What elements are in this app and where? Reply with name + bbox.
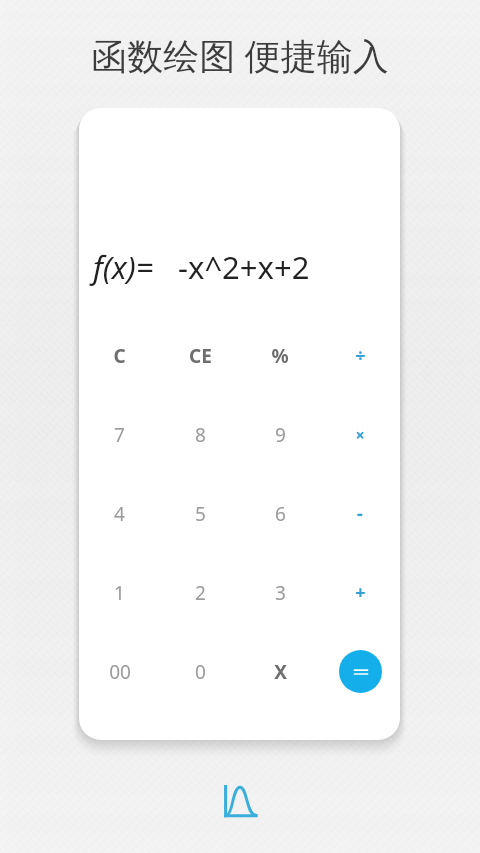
button[interactable]: + <box>320 553 400 632</box>
staticText: CE <box>189 343 212 369</box>
staticText: 函数绘图 便捷输入 <box>91 31 389 80</box>
button[interactable]: 3 <box>240 553 320 632</box>
staticText: 9 <box>275 422 286 448</box>
button[interactable]: 6 <box>240 474 320 553</box>
staticText: × <box>355 424 365 446</box>
staticText: 8 <box>195 422 206 448</box>
staticText: 6 <box>275 501 286 527</box>
button[interactable]: × <box>320 395 400 474</box>
button[interactable]: C <box>79 316 160 395</box>
staticText: % <box>271 343 289 369</box>
staticText: 2 <box>195 580 206 606</box>
button[interactable]: CE <box>160 316 240 395</box>
button[interactable]: Function plot logo <box>220 782 260 822</box>
button[interactable]: ÷ <box>320 316 400 395</box>
staticText: 5 <box>195 501 206 527</box>
staticText: -x^2+x+2 <box>178 246 310 288</box>
staticText: C <box>113 343 126 369</box>
button[interactable]: 0 <box>160 632 240 711</box>
button[interactable]: Equals <box>339 650 382 693</box>
staticText: 4 <box>114 501 125 527</box>
button[interactable]: f(x)= <box>79 244 400 290</box>
button[interactable]: 00 <box>79 632 160 711</box>
staticText: f(x)= <box>93 246 154 288</box>
button[interactable]: X <box>240 632 320 711</box>
button[interactable]: 4 <box>79 474 160 553</box>
staticText: 0 <box>195 659 206 685</box>
button[interactable]: % <box>240 316 320 395</box>
button[interactable]: 8 <box>160 395 240 474</box>
staticText: 7 <box>114 422 125 448</box>
staticText: 00 <box>109 659 131 685</box>
staticText: + <box>355 580 366 605</box>
button[interactable]: 7 <box>79 395 160 474</box>
button[interactable]: - <box>320 474 400 553</box>
staticText: X <box>274 659 287 685</box>
staticText: ÷ <box>355 343 366 368</box>
button[interactable]: 9 <box>240 395 320 474</box>
button[interactable]: 1 <box>79 553 160 632</box>
button[interactable]: 5 <box>160 474 240 553</box>
staticText: - <box>357 501 363 526</box>
button[interactable]: 2 <box>160 553 240 632</box>
staticText: 3 <box>275 580 286 606</box>
staticText: 1 <box>114 580 125 606</box>
